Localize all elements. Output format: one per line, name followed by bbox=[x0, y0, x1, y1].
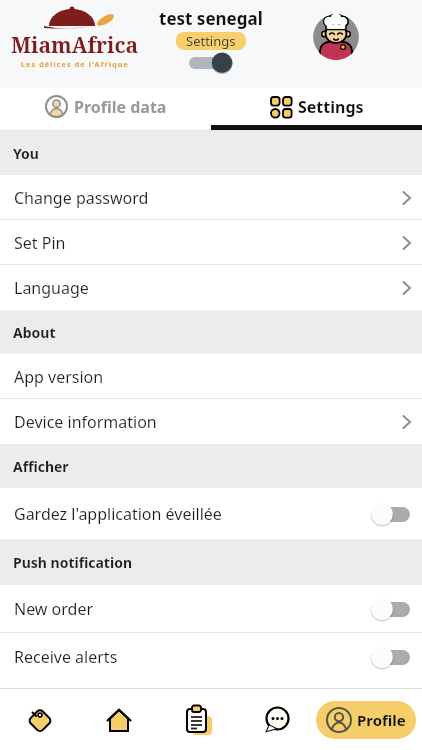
staticText: Language bbox=[14, 277, 89, 299]
staticText: Afficher bbox=[13, 457, 69, 476]
staticText: About bbox=[13, 323, 56, 342]
staticText: Profile data bbox=[74, 96, 167, 118]
staticText: Gardez l'application éveillée bbox=[14, 503, 222, 525]
staticText: App version bbox=[14, 366, 104, 388]
staticText: Receive alerts bbox=[14, 646, 118, 668]
staticText: Set Pin bbox=[14, 232, 66, 254]
staticText: Change password bbox=[14, 187, 149, 209]
staticText: Settings bbox=[186, 32, 236, 50]
staticText: Les délices de l'Afrique bbox=[21, 60, 129, 70]
staticText: New order bbox=[14, 598, 94, 620]
staticText: Profile bbox=[357, 710, 406, 730]
staticText: test senegal bbox=[159, 7, 263, 30]
staticText: Push notification bbox=[13, 553, 132, 572]
staticText: MiamAfrica bbox=[11, 31, 139, 60]
staticText: Device information bbox=[14, 411, 157, 433]
staticText: You bbox=[13, 144, 39, 163]
staticText: Settings bbox=[298, 96, 364, 118]
